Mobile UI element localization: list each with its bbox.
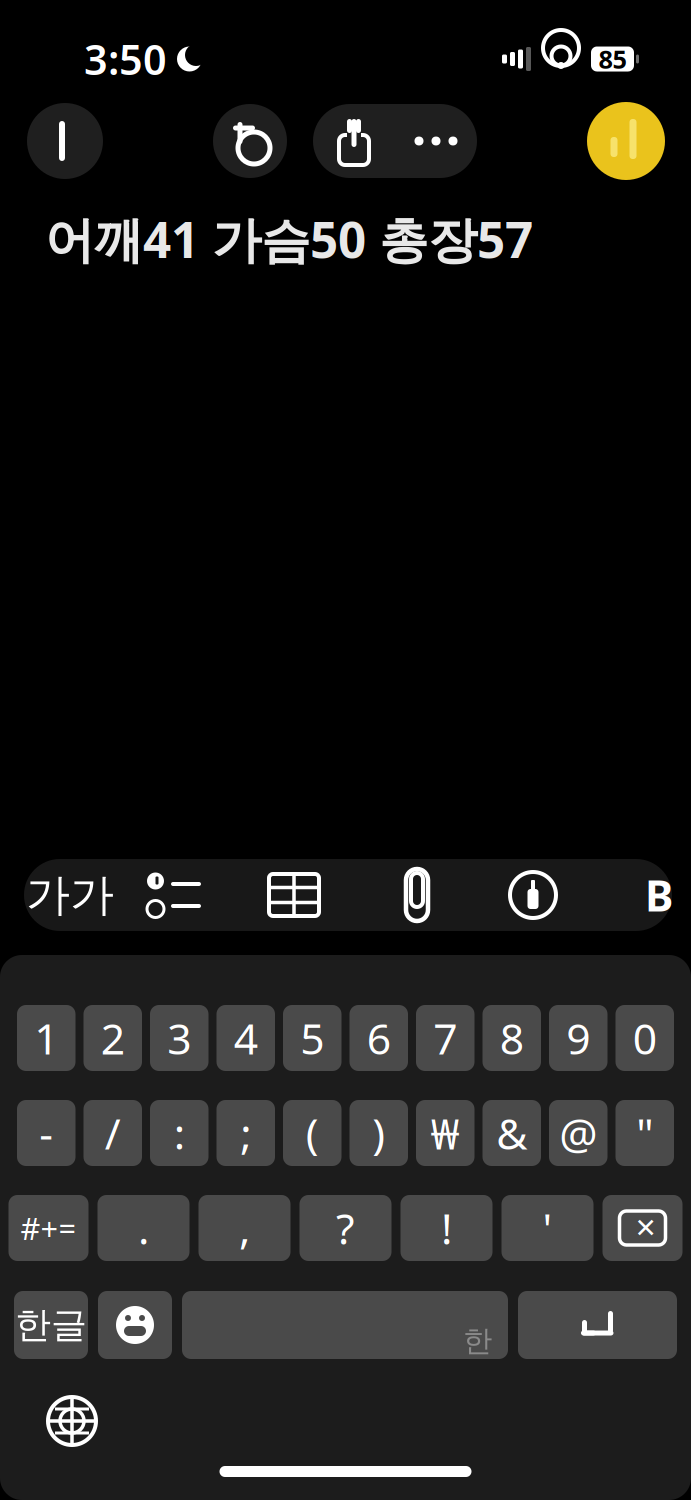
button[interactable]: :	[150, 1100, 208, 1166]
staticText: #+=	[20, 1208, 76, 1248]
button[interactable]: Back	[27, 103, 103, 179]
staticText: 한글	[15, 1303, 87, 1347]
button[interactable]: .	[97, 1195, 189, 1261]
staticText: ₩	[431, 1105, 460, 1161]
button[interactable]: Return	[518, 1291, 677, 1359]
button[interactable]: ₩	[416, 1100, 474, 1166]
staticText: 한	[463, 1323, 492, 1359]
staticText: ?	[336, 1200, 355, 1256]
staticText: ✕	[634, 1213, 656, 1243]
button[interactable]: !	[400, 1195, 492, 1261]
button[interactable]: 1	[17, 1005, 75, 1071]
staticText: 6	[367, 1010, 391, 1066]
staticText: /	[105, 1105, 121, 1161]
staticText: .	[138, 1200, 149, 1256]
staticText: 9	[566, 1010, 590, 1066]
button[interactable]: 3	[150, 1005, 208, 1071]
staticText: 가가	[26, 868, 114, 922]
button[interactable]: )	[349, 1100, 408, 1166]
staticText: '	[542, 1200, 552, 1256]
button[interactable]: Checklist	[116, 859, 232, 931]
staticText: ;	[240, 1105, 251, 1161]
staticText: -	[39, 1105, 53, 1161]
button[interactable]: More	[395, 104, 477, 178]
button[interactable]: ?	[299, 1195, 391, 1261]
button[interactable]: &	[482, 1100, 541, 1166]
staticText: :	[174, 1105, 185, 1161]
staticText: !	[441, 1200, 452, 1256]
button[interactable]: 2	[83, 1005, 142, 1071]
button[interactable]: 8	[482, 1005, 541, 1071]
button[interactable]: /	[83, 1100, 142, 1166]
button[interactable]: Delete	[602, 1195, 682, 1261]
staticText: (	[306, 1105, 319, 1161]
staticText: @	[559, 1105, 597, 1161]
button[interactable]: Space	[182, 1291, 508, 1359]
button[interactable]: ;	[216, 1100, 275, 1166]
button[interactable]: 9	[549, 1005, 607, 1071]
staticText: &	[496, 1105, 527, 1161]
staticText: 어깨41 가슴50 총장57	[45, 206, 533, 271]
staticText: "	[636, 1105, 653, 1161]
button[interactable]: 0	[615, 1005, 674, 1071]
button[interactable]: Emoji	[98, 1291, 172, 1359]
staticText: 5	[300, 1010, 324, 1066]
button[interactable]: 한글	[14, 1291, 88, 1359]
staticText: ,	[239, 1200, 250, 1256]
button[interactable]: More formats	[646, 859, 672, 931]
button[interactable]: 7	[416, 1005, 474, 1071]
button[interactable]: Share	[313, 104, 395, 178]
staticText: 2	[101, 1010, 125, 1066]
button[interactable]: Text format	[24, 859, 116, 931]
button[interactable]: Done	[587, 102, 665, 180]
staticText: 7	[433, 1010, 457, 1066]
button[interactable]: "	[615, 1100, 674, 1166]
button[interactable]: Table	[232, 859, 356, 931]
staticText: 85	[598, 42, 626, 76]
button[interactable]: 6	[349, 1005, 408, 1071]
button[interactable]: #+=	[8, 1195, 88, 1261]
button[interactable]: -	[17, 1100, 75, 1166]
staticText: 1	[34, 1010, 58, 1066]
staticText: 3	[167, 1010, 191, 1066]
button[interactable]: Markup	[478, 859, 588, 931]
button[interactable]: Next keyboard	[36, 1385, 108, 1457]
staticText: B	[645, 867, 673, 923]
button[interactable]: Undo	[213, 104, 287, 178]
button[interactable]: Attach	[356, 859, 478, 931]
button[interactable]: ,	[198, 1195, 290, 1261]
staticText: )	[372, 1105, 385, 1161]
button[interactable]: 5	[283, 1005, 341, 1071]
button[interactable]: @	[549, 1100, 607, 1166]
staticText: 4	[234, 1010, 258, 1066]
button[interactable]: (	[283, 1100, 341, 1166]
staticText: 0	[633, 1010, 657, 1066]
staticText: 8	[500, 1010, 524, 1066]
staticText: 3:50	[84, 32, 167, 86]
button[interactable]: '	[501, 1195, 593, 1261]
button[interactable]: 4	[216, 1005, 275, 1071]
